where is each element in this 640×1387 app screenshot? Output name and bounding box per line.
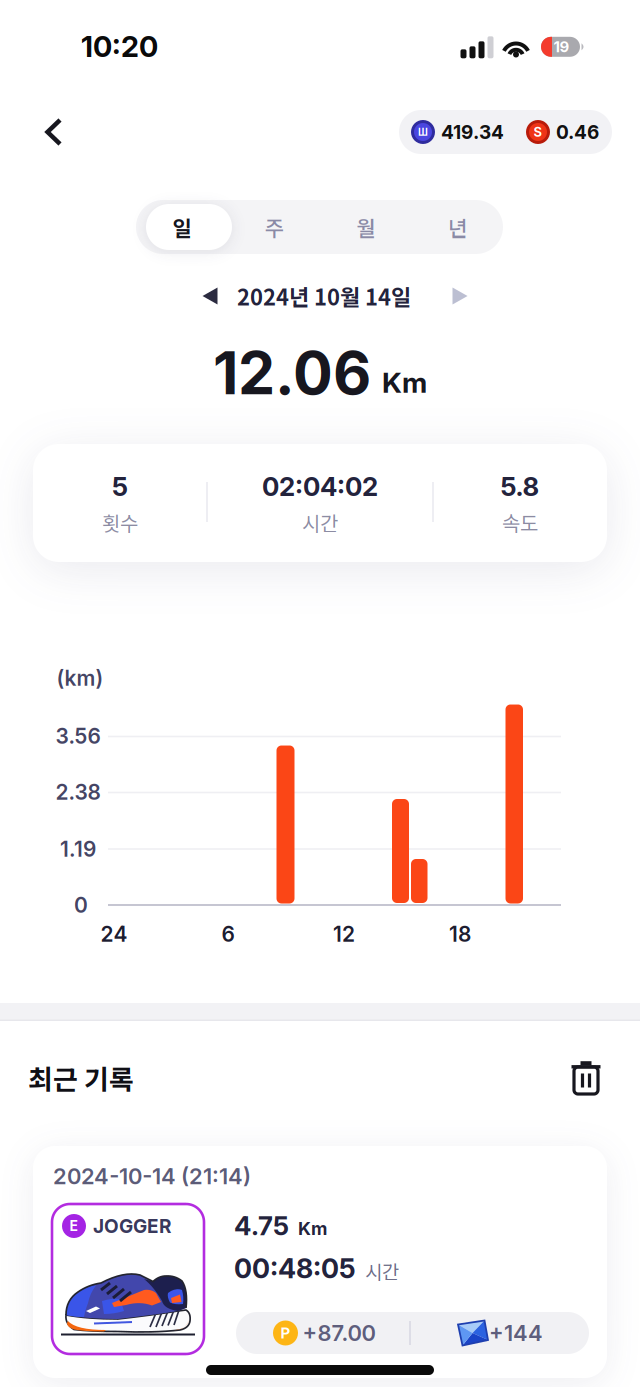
button[interactable]: 2024-10-14 (21:14) xyxy=(33,1146,640,1387)
button[interactable]: Next day xyxy=(441,277,479,315)
staticText: 12.06 xyxy=(213,337,371,408)
staticText: 6 xyxy=(221,921,234,947)
staticText: 5 xyxy=(112,471,128,502)
button[interactable]: 년 xyxy=(412,200,503,254)
staticText: 1.19 xyxy=(60,836,96,862)
staticText: S xyxy=(533,124,542,140)
staticText: 시간 xyxy=(365,1257,399,1284)
staticText: 12 xyxy=(333,921,355,947)
button[interactable]: Back xyxy=(32,110,76,154)
staticText: 0 xyxy=(74,892,88,918)
staticText: 속도 xyxy=(502,508,538,537)
staticText: 2.38 xyxy=(55,779,100,805)
staticText: 횟수 xyxy=(102,508,138,537)
staticText: 00:48:05 xyxy=(234,1252,356,1285)
staticText: +87.00 xyxy=(302,1320,375,1346)
staticText: P xyxy=(280,1324,290,1342)
staticText: 2024-10-14 (21:14) xyxy=(53,1163,251,1190)
staticText: 19 xyxy=(553,38,569,56)
button[interactable]: 일 xyxy=(136,200,228,254)
button[interactable]: Delete records xyxy=(571,1060,615,1104)
staticText: +144 xyxy=(489,1320,543,1346)
staticText: 419.34 xyxy=(441,120,504,143)
staticText: 년 xyxy=(448,212,467,242)
staticText: 2024년 10월 14일 xyxy=(237,280,411,312)
staticText: 24 xyxy=(100,921,127,947)
staticText: 주 xyxy=(264,212,283,242)
button[interactable]: Wallet balance xyxy=(399,110,612,154)
button[interactable]: 월 xyxy=(320,200,412,254)
staticText: 월 xyxy=(356,212,375,242)
staticText: 0.46 xyxy=(556,120,599,143)
staticText: E xyxy=(69,1217,78,1234)
staticText: Km xyxy=(298,1218,327,1239)
button[interactable]: 주 xyxy=(228,200,320,254)
button[interactable]: Previous day xyxy=(191,277,229,315)
staticText: Km xyxy=(382,365,427,399)
staticText: (km) xyxy=(56,665,103,691)
staticText: 02:04:02 xyxy=(262,471,378,502)
staticText: Ш xyxy=(418,126,428,138)
staticText: 시간 xyxy=(302,508,338,537)
staticText: 4.75 xyxy=(234,1210,289,1241)
staticText: 일 xyxy=(172,212,191,242)
staticText: 18 xyxy=(449,921,471,947)
staticText: 5.8 xyxy=(500,471,539,502)
staticText: JOGGER xyxy=(93,1214,171,1237)
staticText: 10:20 xyxy=(81,29,158,64)
staticText: 최근 기록 xyxy=(28,1058,134,1098)
staticText: 3.56 xyxy=(55,723,100,749)
